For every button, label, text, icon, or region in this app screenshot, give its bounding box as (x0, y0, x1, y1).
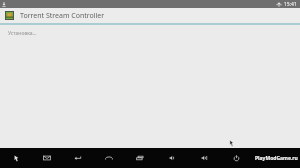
button[interactable]: Recent apps (124, 148, 156, 168)
button[interactable]: Torrent Stream Controller (0, 8, 300, 23)
button[interactable]: Volume up (188, 148, 220, 168)
staticText: PlayModGame.ru (255, 155, 298, 162)
button[interactable]: Volume down (156, 148, 188, 168)
button[interactable]: Screenshot (31, 148, 62, 168)
button[interactable]: Home (93, 148, 124, 168)
button[interactable]: Back (62, 148, 93, 168)
button[interactable]: Pointer (0, 148, 31, 168)
staticText: Torrent Stream Controller (20, 11, 105, 21)
staticText: 15:41 (284, 1, 297, 8)
button[interactable]: Power (220, 148, 252, 168)
staticText: Установка… (8, 30, 37, 37)
